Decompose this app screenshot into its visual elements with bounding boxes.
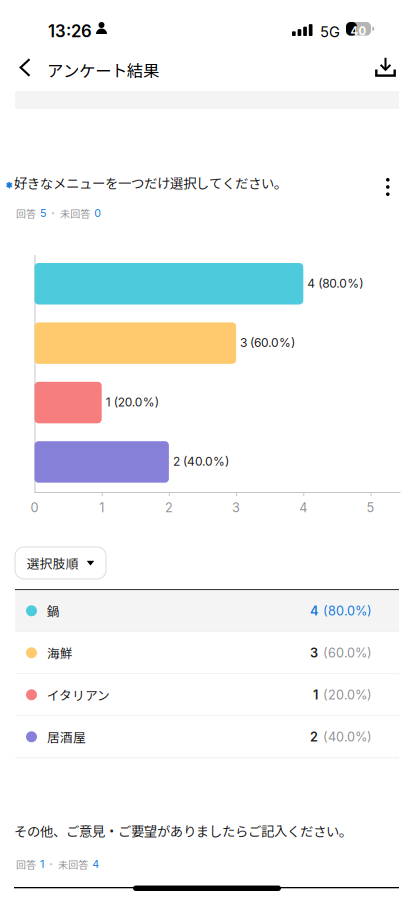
staticText: 3 — [310, 645, 318, 660]
staticText: (40.0%) — [323, 729, 372, 744]
button[interactable]: 選択肢順 — [15, 547, 106, 579]
staticText: 2 (40.0%) — [173, 454, 229, 469]
staticText: 40 — [351, 24, 367, 38]
staticText: 4 — [92, 858, 99, 871]
button[interactable]: 海鮮 — [15, 632, 399, 674]
staticText: 1 (20.0%) — [106, 395, 159, 409]
staticText: 回答 — [16, 857, 36, 871]
staticText: 5 — [366, 500, 374, 515]
staticText: 3 — [232, 500, 240, 515]
staticText: 未回答 — [60, 206, 90, 220]
staticText: 選択肢順 — [27, 554, 79, 572]
staticText: 0 — [94, 207, 101, 220]
staticText: 5G — [320, 23, 340, 41]
staticText: 回答 — [16, 206, 36, 220]
staticText: 3 (60.0%) — [240, 335, 295, 350]
staticText: 5 — [40, 207, 46, 220]
staticText: 好きなメニューを一つだけ選択してください。 — [14, 173, 287, 192]
staticText: 2 — [310, 729, 318, 744]
staticText: 2 — [165, 500, 173, 515]
button[interactable]: 鍋 — [15, 590, 399, 632]
staticText: 4 (80.0%) — [307, 276, 363, 290]
staticText: 居酒屋 — [47, 728, 86, 746]
staticText: 海鮮 — [47, 644, 73, 662]
button[interactable]: 居酒屋 — [15, 716, 399, 758]
staticText: 1 — [40, 858, 44, 871]
button[interactable]: More options — [371, 172, 405, 200]
staticText: (20.0%) — [323, 687, 372, 702]
button[interactable]: Back — [8, 48, 44, 88]
staticText: 13:26 — [48, 21, 92, 41]
button[interactable]: イタリアン — [15, 674, 399, 716]
staticText: (80.0%) — [323, 603, 372, 618]
staticText: (60.0%) — [323, 645, 372, 660]
staticText: 1 — [99, 500, 104, 515]
staticText: 鍋 — [47, 602, 60, 620]
staticText: イタリアン — [47, 686, 110, 704]
button[interactable]: Download — [365, 48, 405, 88]
staticText: アンケート結果 — [47, 58, 159, 82]
staticText: 4 — [310, 603, 318, 618]
staticText: 4 — [299, 500, 307, 515]
staticText: その他、ご意見・ご要望がありましたらご記入ください。 — [14, 821, 352, 840]
staticText: 未回答 — [58, 857, 88, 871]
staticText: 0 — [30, 500, 38, 515]
staticText: 1 — [313, 687, 318, 702]
